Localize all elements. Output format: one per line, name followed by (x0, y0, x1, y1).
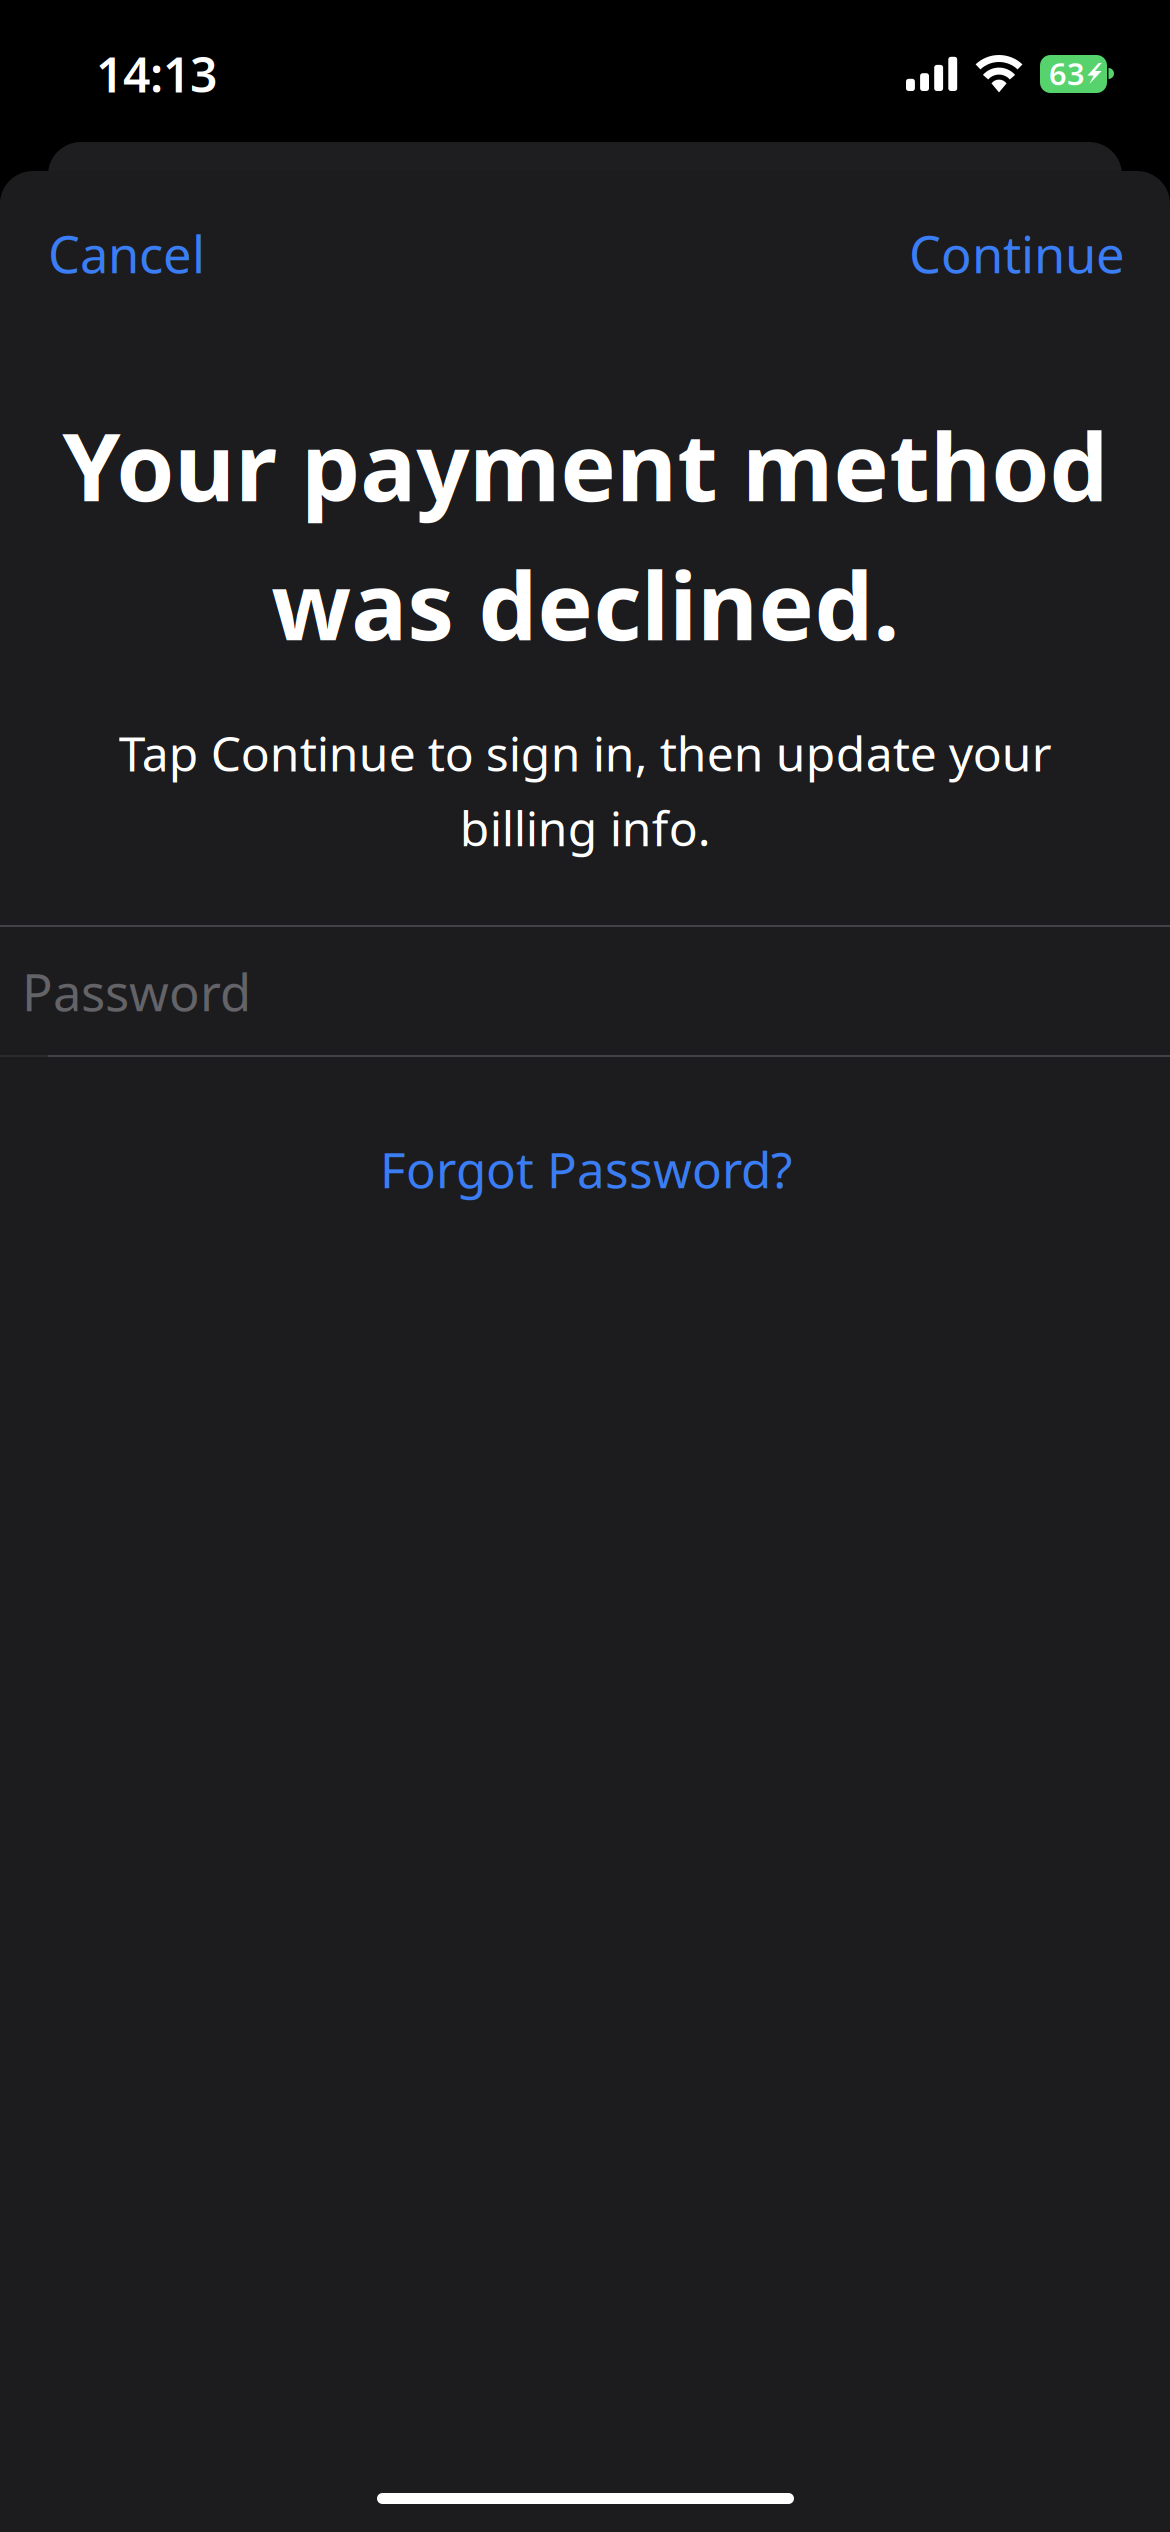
button[interactable]: Cancel (0, 186, 248, 318)
staticText: Your payment method was declined. (62, 403, 1108, 666)
staticText: Forgot Password? (380, 1136, 792, 1202)
staticText: Cancel (48, 220, 205, 287)
staticText: Continue (909, 220, 1125, 287)
button[interactable]: Continue (881, 186, 1170, 318)
staticText: 63 (1049, 53, 1085, 94)
staticText: Password (22, 958, 251, 1025)
button[interactable]: Password (0, 928, 1170, 1056)
staticText: Tap Continue to sign in, then update you… (118, 721, 1051, 859)
button[interactable]: Forgot Password? (286, 1124, 886, 1214)
staticText: 14:13 (96, 42, 217, 106)
